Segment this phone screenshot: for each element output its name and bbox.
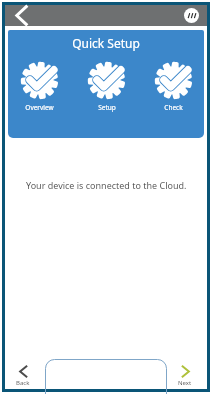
staticText: Your device is connected to the Cloud. — [26, 179, 187, 191]
staticText: Overview — [25, 103, 54, 112]
button[interactable]: Next — [178, 365, 192, 387]
button[interactable]: Setup — [88, 62, 125, 112]
button[interactable]: Back — [5, 5, 31, 26]
button[interactable]: Check — [155, 62, 192, 112]
button[interactable]: Back — [16, 365, 30, 387]
button[interactable]: Overview — [21, 62, 58, 112]
button[interactable]: App logo — [184, 8, 199, 23]
staticText: Check — [164, 103, 183, 112]
staticText: Setup — [98, 103, 116, 112]
staticText: Back — [16, 379, 30, 387]
staticText: Next — [178, 379, 192, 387]
button[interactable] — [45, 359, 167, 389]
staticText: Quick Setup — [72, 35, 140, 51]
